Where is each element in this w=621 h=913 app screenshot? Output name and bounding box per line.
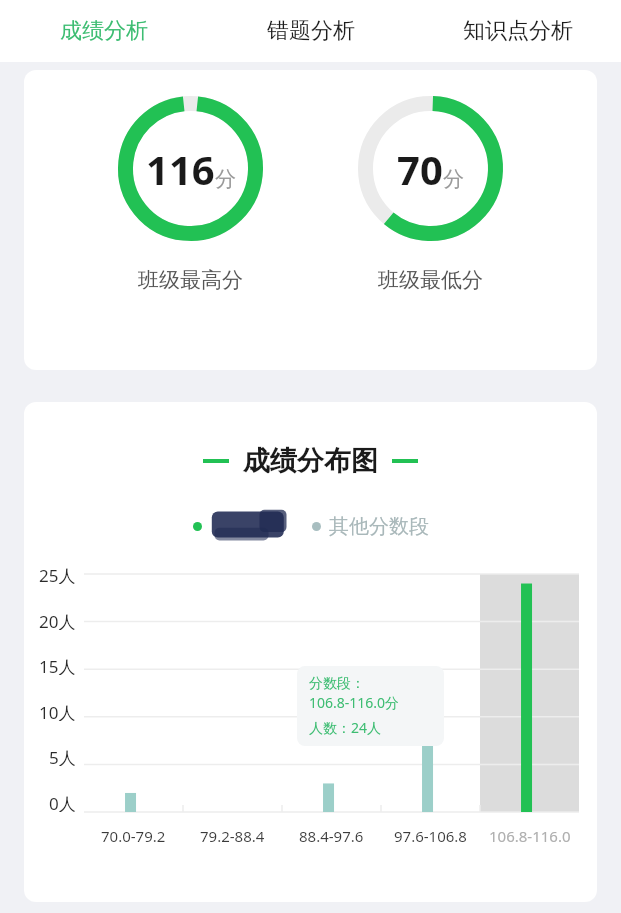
staticText: 错题分析 xyxy=(267,17,355,45)
staticText: 79.2-88.4 xyxy=(200,826,265,846)
staticText: 分 xyxy=(443,166,464,192)
staticText: 成绩分析 xyxy=(60,17,148,45)
staticText: 25人 xyxy=(39,564,76,584)
staticText: 成绩分布图 xyxy=(243,444,378,478)
staticText: 88.4-97.6 xyxy=(299,826,364,846)
button[interactable]: 成绩分析 xyxy=(0,0,207,62)
staticText: 5人 xyxy=(49,746,76,766)
button[interactable]: 错题分析 xyxy=(207,0,414,62)
staticText: 班级最高分 xyxy=(138,267,243,293)
button[interactable]: 分数段：106.8-116.0分 xyxy=(309,675,432,737)
staticText: 116 xyxy=(146,142,215,196)
staticText: 人数：24人 xyxy=(309,718,382,737)
staticText: 分数段：106.8-116.0分 xyxy=(309,675,432,712)
staticText: 106.8-116.0 xyxy=(489,826,571,846)
staticText: 20人 xyxy=(39,610,76,630)
staticText: 15人 xyxy=(39,655,76,675)
staticText: 0人 xyxy=(49,792,76,812)
staticText: 10人 xyxy=(39,701,76,721)
staticText: 70 xyxy=(397,142,443,196)
staticText: 分 xyxy=(215,166,236,192)
staticText: 知识点分析 xyxy=(463,17,573,45)
button[interactable]: 知识点分析 xyxy=(414,0,621,62)
staticText: 其他分数段 xyxy=(329,514,429,539)
staticText: 97.6-106.8 xyxy=(394,826,467,846)
staticText: 70.0-79.2 xyxy=(101,826,166,846)
staticText: 班级最低分 xyxy=(378,267,483,293)
